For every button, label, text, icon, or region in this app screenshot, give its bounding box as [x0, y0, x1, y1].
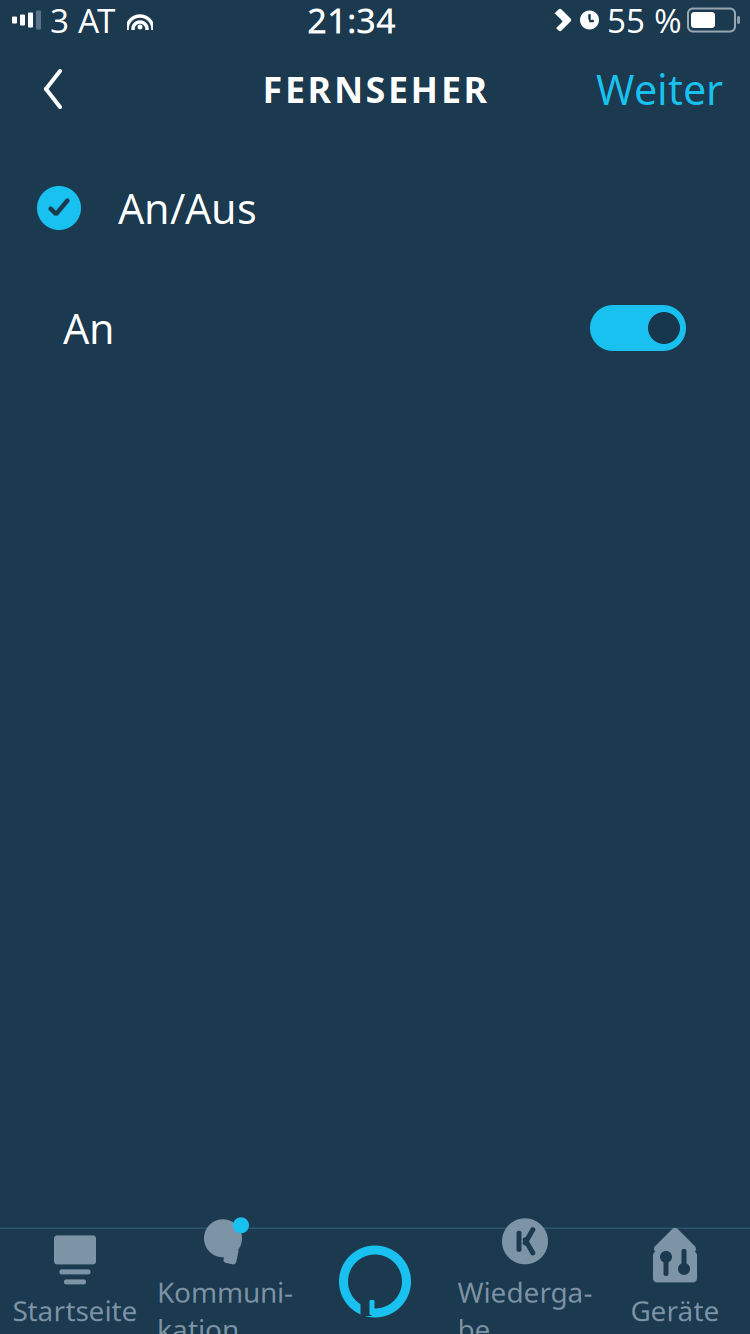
staticText: Kommunikation: [157, 1273, 293, 1334]
staticText: Wiedergabe: [457, 1273, 592, 1334]
button[interactable]: An: [0, 298, 750, 358]
button[interactable]: Kommunikation: [150, 1229, 300, 1334]
staticText: 55 %: [607, 0, 682, 42]
staticText: Geräte: [630, 1292, 719, 1329]
button[interactable]: Alexa: [300, 1229, 450, 1334]
button[interactable]: An/Aus: [0, 177, 750, 239]
button[interactable]: Weiter: [580, 59, 739, 119]
staticText: 3 AT: [41, 0, 116, 42]
staticText: 21:34: [307, 0, 396, 43]
staticText: An: [63, 301, 115, 355]
button[interactable]: Zurück: [16, 59, 90, 119]
button[interactable]: Wiedergabe: [450, 1229, 600, 1334]
staticText: Weiter: [596, 62, 723, 116]
staticText: An/Aus: [118, 181, 257, 235]
staticText: Startseite: [12, 1292, 137, 1329]
button[interactable]: Startseite: [0, 1229, 150, 1334]
staticText: FERNSEHER: [262, 65, 487, 113]
button[interactable]: Geräte: [600, 1229, 750, 1334]
